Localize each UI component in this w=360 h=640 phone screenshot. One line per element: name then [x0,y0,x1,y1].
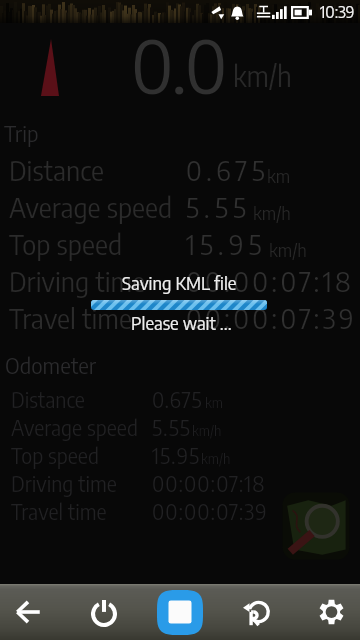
staticText: 00:00:07:18 [186,264,354,298]
staticText: Trip [4,119,39,147]
staticText: Average speed [9,190,173,224]
staticText: Travel time [9,301,132,335]
staticText: 0.0 [131,19,228,110]
staticText: Driving time [11,470,117,496]
staticText: Please wait ... [131,311,232,333]
staticText: Distance [11,386,85,412]
staticText: km [205,394,224,412]
staticText: Average speed [11,414,138,440]
staticText: Saving KML file [122,271,237,293]
staticText: Distance [9,153,104,187]
staticText: 0.675 [186,153,270,187]
staticText: 5.55 [152,414,191,440]
staticText: 00:00:07:18 [152,470,266,496]
staticText: km/h [233,58,292,93]
staticText: Driving time [9,264,146,298]
staticText: Top speed [9,227,123,261]
staticText: 00:00:07:39 [186,301,357,335]
staticText: 5.55 [186,190,251,224]
button[interactable]: Stop [157,590,203,635]
staticText: 0.675 [152,386,203,412]
staticText: 10:39 [320,2,355,22]
staticText: 15.95 [152,442,201,468]
staticText: Odometer [5,351,97,379]
staticText: Top speed [11,442,99,468]
button[interactable]: Back [0,584,58,640]
staticText: km/h [269,238,307,260]
button[interactable]: Reset [226,584,286,640]
staticText: km/h [253,201,291,223]
staticText: km/h [192,422,222,440]
staticText: km [267,164,291,186]
staticText: km/h [201,450,231,468]
button[interactable]: Settings [301,584,360,640]
staticText: Travel time [11,498,107,524]
staticText: 15.95 [186,227,267,261]
button[interactable]: Power [74,584,134,640]
staticText: 00:00:07:39 [152,498,268,524]
